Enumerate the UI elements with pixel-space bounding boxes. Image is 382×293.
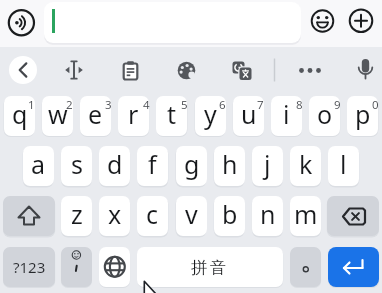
button[interactable] [227,56,255,84]
staticText: j [264,147,271,181]
staticText: g [184,147,200,181]
staticText: 7 [257,97,264,110]
staticText: a [31,147,46,181]
button[interactable]: h [214,146,245,186]
staticText: n [260,197,276,231]
staticText: 8 [296,97,303,110]
button[interactable] [3,196,55,236]
button[interactable]: a [23,146,54,186]
button[interactable]: q [4,96,35,136]
button[interactable] [61,247,92,287]
button[interactable] [172,56,200,84]
staticText: 拼音 [191,257,229,277]
button[interactable] [8,8,36,36]
button[interactable]: r [118,96,149,136]
button[interactable] [310,8,336,34]
button[interactable] [9,56,37,84]
staticText: 6 [219,97,226,110]
staticText: m [294,197,318,231]
staticText: z [71,197,83,231]
button[interactable] [327,196,379,236]
button[interactable] [328,247,379,287]
staticText: s [71,147,83,181]
button[interactable]: u [233,96,264,136]
staticText: b [222,197,238,231]
staticText: 2 [66,97,73,110]
button[interactable] [44,2,301,43]
button[interactable] [290,247,321,287]
staticText: h [222,147,238,181]
button[interactable]: s [61,146,92,186]
button[interactable]: v [176,196,207,236]
staticText: e [88,97,103,131]
staticText: r [128,97,139,131]
button[interactable]: d [99,146,130,186]
staticText: d [107,147,123,181]
staticText: v [185,197,198,231]
button[interactable]: j [252,146,283,186]
button[interactable]: b [214,196,245,236]
button[interactable]: 拼音 [137,247,283,287]
button[interactable]: n [252,196,283,236]
button[interactable] [60,56,88,84]
staticText: u [241,97,257,131]
staticText: w [48,97,68,131]
staticText: p [355,97,371,131]
button[interactable]: ?123 [3,247,55,287]
staticText: i [283,97,290,131]
button[interactable]: g [176,146,207,186]
staticText: f [148,147,157,181]
staticText: q [12,97,28,131]
staticText: ?123 [13,257,46,277]
button[interactable]: o [309,96,340,136]
button[interactable]: w [42,96,73,136]
button[interactable] [296,56,324,84]
button[interactable]: m [290,196,321,236]
staticText: x [108,197,122,231]
button[interactable]: x [99,196,130,236]
button[interactable] [351,56,379,84]
button[interactable]: p [347,96,378,136]
button[interactable] [99,247,130,287]
staticText: l [340,147,347,181]
button[interactable]: i [271,96,302,136]
staticText: 0 [372,97,379,110]
button[interactable]: f [137,146,168,186]
button[interactable]: y [195,96,226,136]
button[interactable]: t [156,96,187,136]
button[interactable]: c [137,196,168,236]
button[interactable]: l [328,146,359,186]
button[interactable]: k [290,146,321,186]
button[interactable]: z [61,196,92,236]
staticText: y [204,97,217,131]
staticText: 1 [28,97,35,110]
staticText: c [146,197,159,231]
staticText: 4 [143,97,150,110]
staticText: 9 [334,97,341,110]
button[interactable]: e [80,96,111,136]
staticText: 3 [105,97,112,110]
button[interactable] [116,56,144,84]
staticText: o [317,97,333,131]
staticText: 5 [181,97,188,110]
staticText: k [299,147,313,181]
button[interactable] [348,8,374,34]
staticText: t [167,97,177,131]
